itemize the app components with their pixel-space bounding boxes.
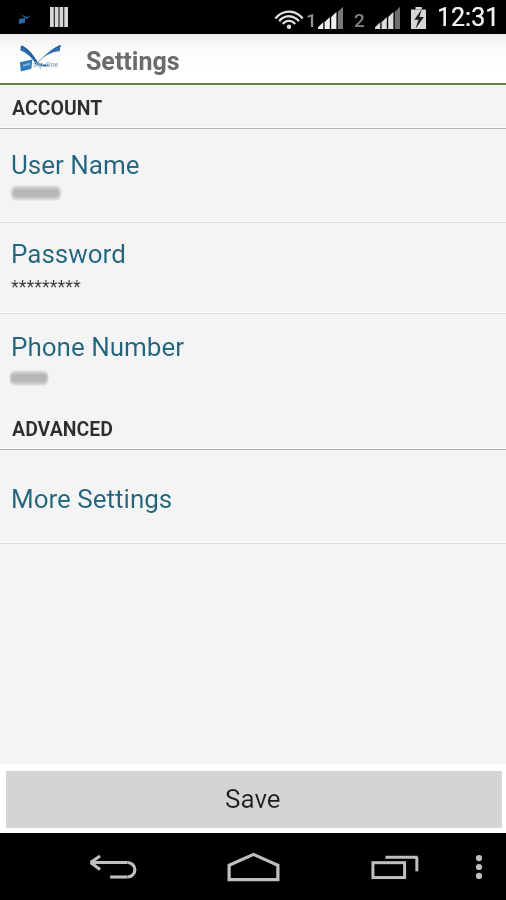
- button[interactable]: More Settings: [0, 450, 506, 543]
- button[interactable]: Back: [42, 833, 182, 900]
- staticText: ADVANCED: [12, 418, 113, 441]
- staticText: ACCOUNT: [12, 97, 103, 120]
- staticText: More Settings: [11, 484, 173, 514]
- staticText: 12:31: [437, 3, 500, 32]
- staticText: 2: [354, 9, 365, 31]
- button[interactable]: Phone Number: [0, 314, 506, 406]
- staticText: User Name: [11, 150, 140, 180]
- staticText: 1: [306, 9, 317, 31]
- button[interactable]: Recent apps: [325, 833, 465, 900]
- button[interactable]: Save: [6, 771, 500, 826]
- staticText: Phone Number: [11, 332, 185, 362]
- staticText: Settings: [86, 47, 180, 76]
- button[interactable]: Password: [0, 223, 506, 313]
- button[interactable]: Home: [183, 833, 323, 900]
- staticText: Save: [225, 784, 281, 814]
- staticText: *********: [11, 276, 81, 297]
- button[interactable]: User Name: [0, 129, 506, 222]
- button[interactable]: More options: [454, 833, 504, 900]
- staticText: Password: [11, 239, 126, 269]
- staticText: Sip-One: [33, 61, 59, 69]
